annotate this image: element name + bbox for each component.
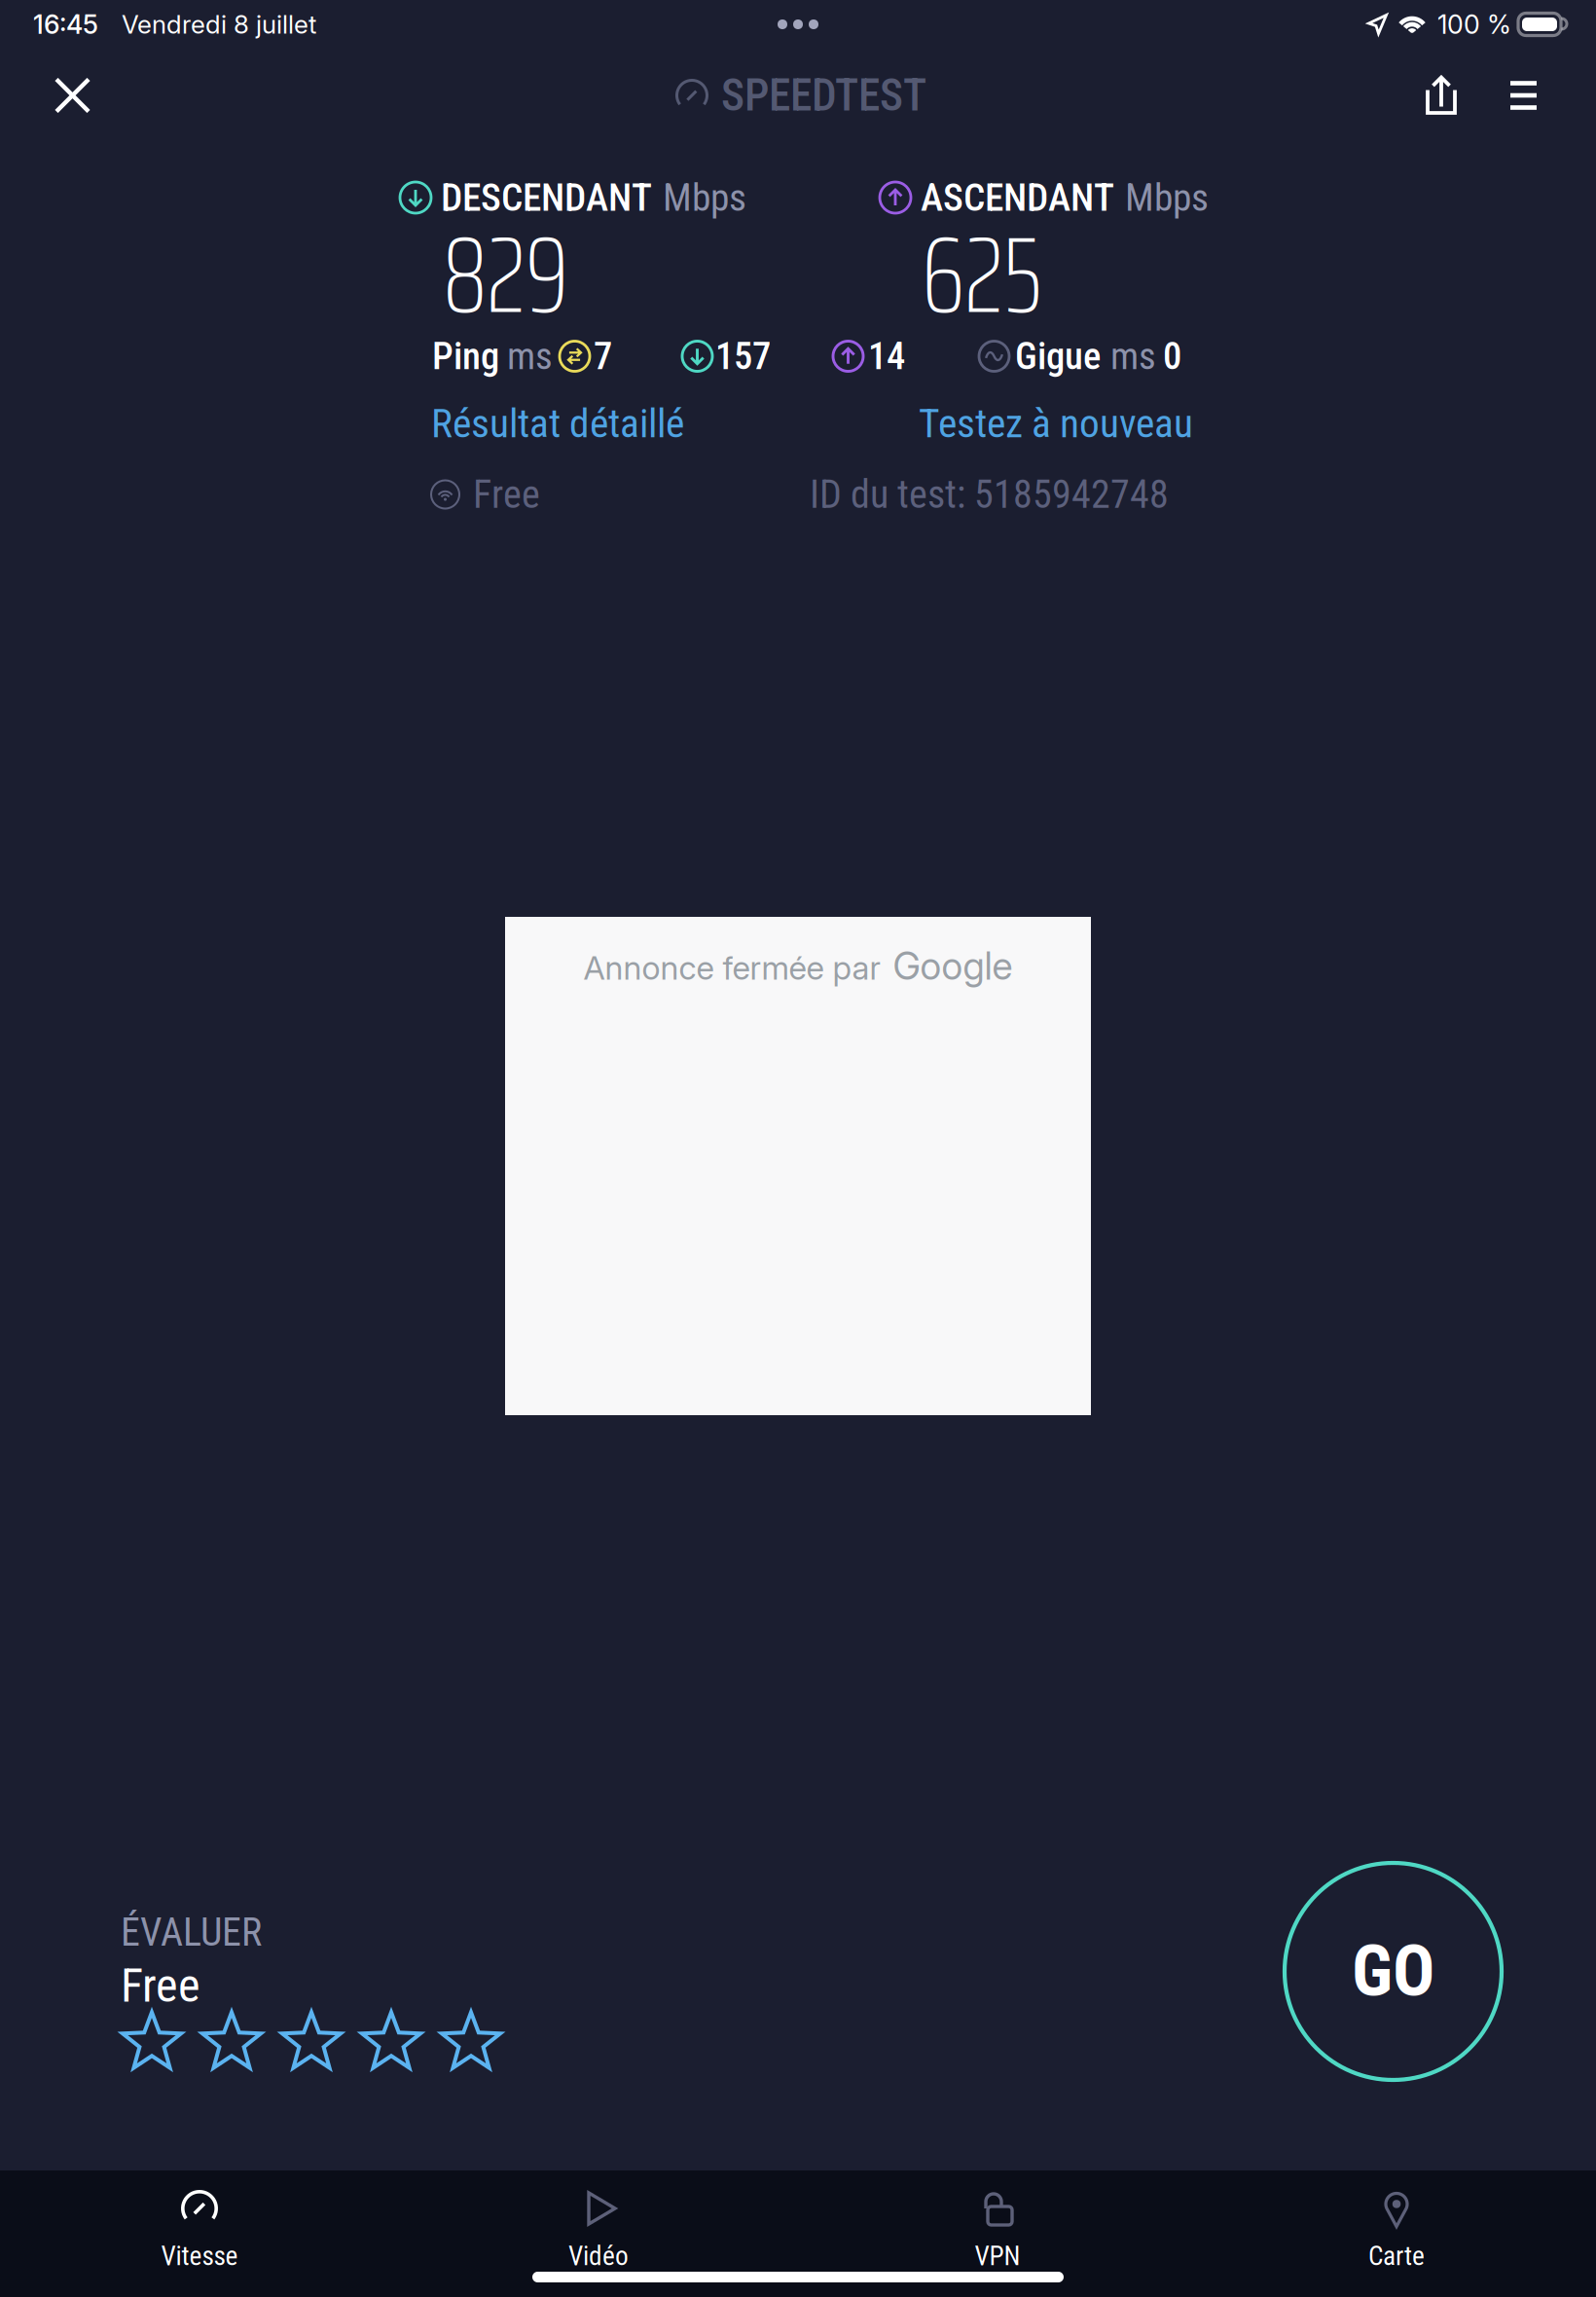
- staticText: ASCENDANT: [921, 175, 1114, 220]
- staticText: Mbps: [663, 175, 746, 220]
- button[interactable]: Vitesse: [0, 2170, 399, 2297]
- staticText: DESCENDANT: [441, 175, 652, 220]
- staticText: VPN: [975, 2241, 1020, 2272]
- staticText: 14: [868, 334, 905, 378]
- staticText: Google: [893, 943, 1013, 989]
- staticText: Free: [121, 1958, 200, 2013]
- staticText: 16:45: [33, 9, 98, 40]
- button[interactable]: Rate 2 stars: [200, 2010, 263, 2070]
- button[interactable]: Rate 1 star: [121, 2010, 183, 2070]
- staticText: Vidéo: [568, 2241, 629, 2272]
- staticText: Carte: [1368, 2241, 1425, 2272]
- staticText: Free: [473, 472, 540, 517]
- staticText: 0: [1163, 334, 1181, 378]
- staticText: 157: [715, 334, 771, 378]
- staticText: ID du test: 5185942748: [810, 472, 1169, 517]
- button[interactable]: Résultat détaillé: [431, 400, 684, 447]
- button[interactable]: Vidéo: [399, 2170, 798, 2297]
- staticText: SPEEDTEST: [721, 69, 926, 121]
- button[interactable]: Share: [1402, 48, 1467, 143]
- button[interactable]: Menu: [1467, 49, 1596, 142]
- staticText: Vitesse: [161, 2241, 238, 2272]
- staticText: Ping: [432, 334, 499, 378]
- staticText: 7: [594, 334, 612, 378]
- button[interactable]: GO: [1285, 1863, 1502, 2080]
- staticText: ÉVALUER: [121, 1910, 262, 1955]
- button[interactable]: VPN: [798, 2170, 1197, 2297]
- staticText: 100 %: [1437, 9, 1511, 40]
- staticText: ms: [507, 334, 553, 378]
- button[interactable]: Close: [0, 48, 116, 143]
- staticText: GO: [1352, 1930, 1434, 2013]
- staticText: 625: [922, 190, 1042, 359]
- staticText: Mbps: [1125, 175, 1209, 220]
- staticText: Vendredi 8 juillet: [122, 9, 316, 40]
- button[interactable]: Testez à nouveau: [919, 400, 1193, 447]
- staticText: Résultat détaillé: [431, 400, 684, 447]
- staticText: ms: [1110, 334, 1156, 378]
- staticText: 829: [443, 190, 568, 359]
- staticText: Annonce fermée par: [583, 948, 880, 987]
- button[interactable]: Rate 5 stars: [440, 2010, 502, 2070]
- staticText: Testez à nouveau: [919, 400, 1193, 447]
- button[interactable]: Rate 4 stars: [360, 2010, 422, 2070]
- button[interactable]: Rate 3 stars: [280, 2010, 343, 2070]
- button[interactable]: Carte: [1197, 2170, 1596, 2297]
- staticText: Gigue: [1015, 334, 1101, 378]
